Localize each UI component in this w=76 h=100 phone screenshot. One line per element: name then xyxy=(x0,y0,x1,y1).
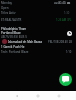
button[interactable]: Portland Blaze xyxy=(0,30,76,35)
staticText: PBL/10B 20B 4V 2B xyxy=(48,40,72,44)
staticText: 1:26 AM 3PL xyxy=(56,18,72,22)
staticText: 4B:75/3V:SS/ BUS S xyxy=(1,35,27,39)
button[interactable]: 4B:75/3V:SS/ BUS S xyxy=(0,34,76,39)
staticText: Portland Blaze xyxy=(1,31,21,35)
staticText: Open xyxy=(1,6,9,10)
button[interactable]: Open xyxy=(0,6,76,12)
staticText: uu 4G 4G xyxy=(54,1,66,5)
staticText: Islamabad eh Mah Bazaa xyxy=(8,40,43,44)
button[interactable]: ET:REAL?ALSTR xyxy=(0,17,76,23)
staticText: Philadelphia Tham xyxy=(1,27,27,31)
button[interactable]: Recent apps xyxy=(55,92,63,100)
button[interactable]: Home xyxy=(34,92,42,100)
button[interactable]: Philadelphia Tham xyxy=(0,26,76,31)
staticText: Titles Activ xyxy=(1,11,16,15)
button[interactable]: Tech: Portland Blaze xyxy=(0,49,76,54)
staticText: 1 Garnik Push He xyxy=(1,45,25,49)
staticText: Tech: Portland Blaze xyxy=(1,50,29,54)
button[interactable]: Islamabad eh Mah Bazaa xyxy=(0,39,76,45)
button[interactable]: Back xyxy=(13,92,21,100)
button[interactable]: Titles Activ xyxy=(0,11,76,17)
staticText: 1:30 xyxy=(64,11,70,15)
staticText: ET:REAL?ALSTR xyxy=(1,18,22,22)
staticText: Monday xyxy=(1,1,13,5)
button[interactable]: New chat xyxy=(59,73,72,86)
button[interactable]: 1 Garnik Push He xyxy=(0,44,76,49)
staticText: 1:10 xyxy=(66,50,72,54)
